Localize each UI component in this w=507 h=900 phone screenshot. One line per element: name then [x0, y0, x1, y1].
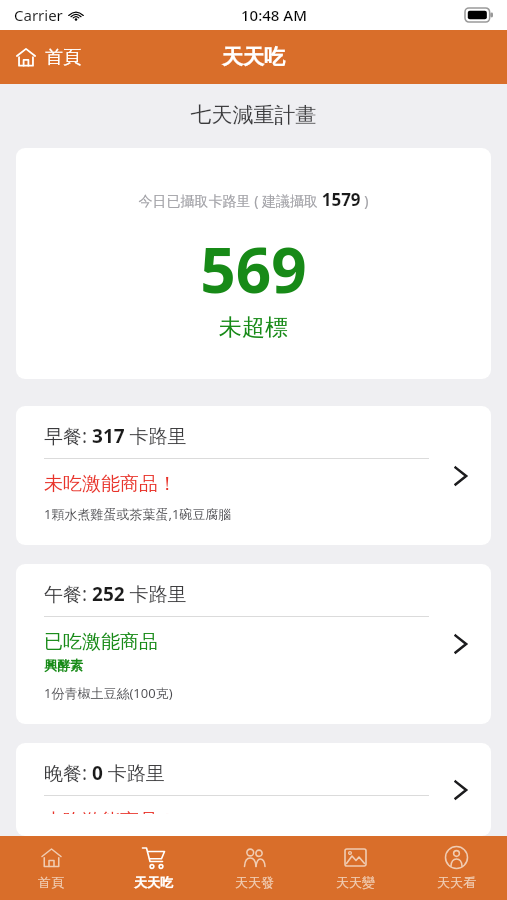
staticText: 天天吃	[222, 44, 285, 70]
button[interactable]: 天天吃	[102, 836, 204, 900]
staticText: 七天減重計畫	[0, 102, 507, 128]
staticText: Carrier	[14, 5, 63, 25]
button[interactable]: 今日已攝取卡路里 ( 建議攝取 1579 )	[16, 148, 491, 379]
staticText: 天天發	[235, 874, 274, 890]
button[interactable]: 天天看	[406, 836, 507, 900]
button[interactable]: 首頁	[0, 37, 91, 77]
staticText: 天天看	[437, 874, 476, 890]
button[interactable]: 天天發	[204, 836, 305, 900]
button[interactable]: 天天變	[305, 836, 406, 900]
staticText: 未超標	[16, 313, 491, 342]
staticText: 早餐: 317 卡路里	[44, 423, 187, 449]
staticText: 首頁	[38, 874, 64, 890]
button[interactable]: 晚餐: 0 卡路里	[16, 743, 491, 836]
staticText: 未吃激能商品！	[44, 472, 177, 496]
staticText: 今日已攝取卡路里 ( 建議攝取 1579 )	[16, 188, 491, 211]
staticText: 10:48 AM	[241, 5, 307, 25]
button[interactable]: 早餐: 317 卡路里	[16, 406, 491, 545]
staticText: 天天變	[336, 874, 375, 890]
staticText: 1顆水煮雞蛋或茶葉蛋,1碗豆腐腦	[44, 505, 232, 523]
staticText: 首頁	[45, 46, 81, 69]
staticText: 已吃激能商品	[44, 630, 158, 654]
staticText: 569	[16, 227, 491, 311]
staticText: 未吃激能商品！	[44, 809, 177, 814]
staticText: 午餐: 252 卡路里	[44, 581, 187, 607]
staticText: 天天吃	[134, 874, 173, 890]
button[interactable]: 首頁	[0, 836, 102, 900]
staticText: 1份青椒土豆絲(100克)	[44, 684, 173, 702]
staticText: 興酵素	[44, 657, 83, 673]
staticText: 晚餐: 0 卡路里	[44, 760, 165, 786]
button[interactable]: 午餐: 252 卡路里	[16, 564, 491, 724]
